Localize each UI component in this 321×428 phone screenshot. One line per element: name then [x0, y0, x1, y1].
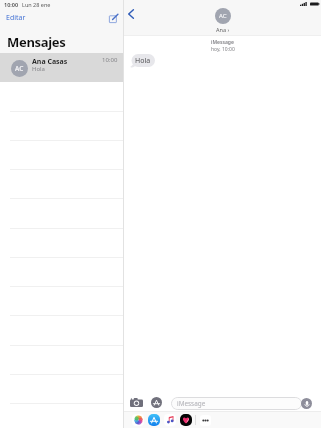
staticText: 10:00: [4, 1, 19, 8]
button[interactable]: Camera: [128, 394, 144, 410]
staticText: Lun 28 ene: [22, 1, 51, 8]
button[interactable]: AC: [0, 53, 123, 82]
staticText: AC: [15, 64, 24, 73]
button[interactable]: App Store: [148, 394, 164, 410]
button[interactable]: New message: [105, 10, 121, 26]
button[interactable]: iMessage: [171, 397, 302, 410]
staticText: Hola: [32, 65, 45, 73]
staticText: Mensajes: [7, 33, 66, 51]
staticText: Hola: [135, 56, 151, 66]
staticText: iMessage: [211, 39, 234, 46]
button[interactable]: Photos: [132, 414, 144, 426]
button[interactable]: Back: [123, 6, 139, 22]
button[interactable]: Record audio: [301, 398, 312, 409]
button[interactable]: More: [199, 414, 211, 426]
staticText: 10:00: [102, 56, 118, 64]
button[interactable]: Digital Touch: [180, 414, 192, 426]
staticText: Ana ›: [216, 26, 230, 33]
staticText: iMessage: [177, 399, 206, 408]
button[interactable]: AC: [215, 8, 231, 24]
staticText: hoy, 10:00: [211, 46, 235, 53]
button[interactable]: Music: [164, 414, 176, 426]
staticText: Ana Casas: [32, 57, 68, 67]
staticText: Editar: [6, 13, 26, 23]
button[interactable]: Editar: [3, 11, 29, 25]
button[interactable]: App Store: [148, 414, 160, 426]
staticText: AC: [219, 12, 227, 20]
